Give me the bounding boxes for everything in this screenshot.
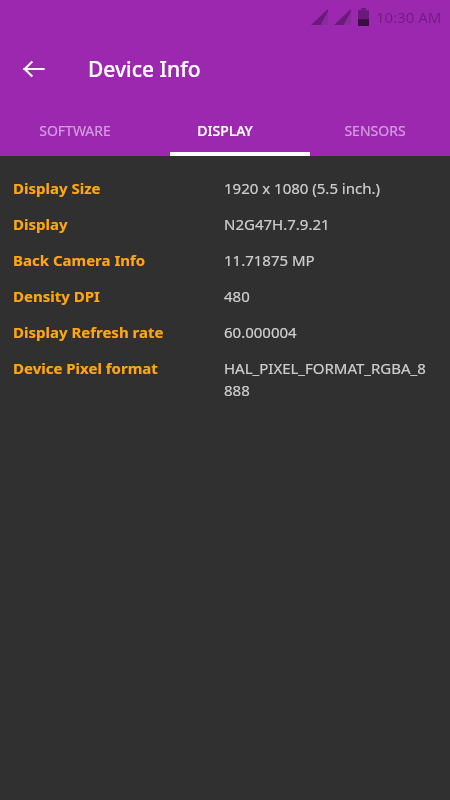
staticText: HAL_PIXEL_FORMAT_RGBA_8888 bbox=[224, 358, 430, 401]
staticText: Density DPI bbox=[13, 286, 224, 306]
button[interactable]: Display Size bbox=[0, 170, 450, 206]
staticText: 480 bbox=[224, 286, 250, 306]
staticText: 10:30 AM bbox=[376, 7, 442, 27]
button[interactable]: SENSORS bbox=[300, 104, 450, 156]
staticText: 11.71875 MP bbox=[224, 250, 315, 270]
staticText: Display Size bbox=[13, 178, 224, 198]
staticText: SENSORS bbox=[344, 121, 406, 140]
button[interactable]: Density DPI bbox=[0, 278, 450, 314]
staticText: DISPLAY bbox=[197, 121, 253, 140]
staticText: SOFTWARE bbox=[39, 121, 111, 140]
button[interactable]: DISPLAY bbox=[150, 104, 300, 156]
staticText: 60.000004 bbox=[224, 322, 297, 342]
staticText: Device Pixel format bbox=[13, 358, 224, 378]
button[interactable]: Back bbox=[10, 45, 58, 93]
staticText: Display Refresh rate bbox=[13, 322, 224, 342]
staticText: 1920 x 1080 (5.5 inch.) bbox=[224, 178, 380, 198]
staticText: N2G47H.7.9.21 bbox=[224, 214, 330, 234]
staticText: Device Info bbox=[88, 55, 201, 84]
staticText: Back Camera Info bbox=[13, 250, 224, 270]
button[interactable]: Display Refresh rate bbox=[0, 314, 450, 350]
button[interactable]: Display bbox=[0, 206, 450, 242]
button[interactable]: SOFTWARE bbox=[0, 104, 150, 156]
button[interactable]: Device Pixel format bbox=[0, 350, 450, 409]
staticText: Display bbox=[13, 214, 224, 234]
button[interactable]: Back Camera Info bbox=[0, 242, 450, 278]
